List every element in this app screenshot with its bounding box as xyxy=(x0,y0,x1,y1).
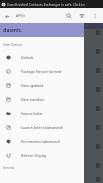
staticText: Date updated xyxy=(21,83,44,88)
staticText: Permissions (advanced) xyxy=(21,139,60,144)
button[interactable]: Default xyxy=(0,50,84,64)
button[interactable]: Date installed xyxy=(0,92,84,106)
button[interactable]: Package file size (sorted) xyxy=(0,64,84,78)
staticText: Default xyxy=(21,55,34,60)
staticText: Scan finished Contacts Exchanger is safe… xyxy=(7,2,85,7)
button[interactable]: Refresh Display xyxy=(0,148,84,162)
staticText: Launch Intent (advanced) xyxy=(21,125,63,130)
staticText: Source folder xyxy=(21,111,43,116)
button[interactable]: Launch Intent (advanced) xyxy=(0,120,84,134)
button[interactable]: Search xyxy=(62,9,75,22)
button[interactable]: More options xyxy=(88,9,101,22)
button[interactable]: Source folder xyxy=(0,106,84,120)
staticText: View Options xyxy=(3,43,23,47)
staticText: Package file size (sorted) xyxy=(21,69,62,74)
button[interactable]: Back xyxy=(0,9,14,23)
button[interactable]: Date updated xyxy=(0,78,84,92)
staticText: Refresh Display xyxy=(21,153,47,158)
staticText: dasmic. xyxy=(3,26,23,33)
staticText: General xyxy=(3,166,15,170)
staticText: Date installed xyxy=(21,97,44,102)
staticText: APKit xyxy=(16,13,25,18)
button[interactable]: Permissions (advanced) xyxy=(0,134,84,148)
button[interactable]: Sort xyxy=(75,9,88,22)
